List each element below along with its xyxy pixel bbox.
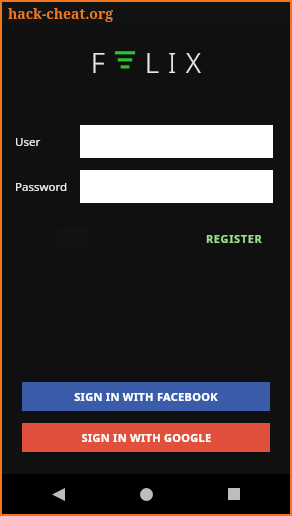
staticText: L bbox=[145, 44, 159, 81]
button[interactable]: Home bbox=[129, 477, 163, 511]
staticText: X bbox=[186, 44, 201, 81]
staticText: F bbox=[91, 44, 105, 81]
staticText: SIGN IN WITH GOOGLE bbox=[81, 430, 212, 445]
staticText: Password bbox=[15, 179, 68, 195]
staticText: SIGN IN WITH FACEBOOK bbox=[74, 389, 218, 404]
button[interactable]: SIGN IN WITH FACEBOOK bbox=[22, 382, 270, 411]
staticText: hack-cheat.org bbox=[8, 4, 114, 23]
button[interactable]: SIGN IN WITH GOOGLE bbox=[22, 423, 270, 452]
staticText: User bbox=[15, 134, 41, 150]
button[interactable]: Back bbox=[41, 477, 75, 511]
button[interactable]: REGISTER bbox=[196, 225, 273, 252]
button[interactable]: Recent apps bbox=[217, 477, 251, 511]
staticText: REGISTER bbox=[206, 231, 263, 246]
staticText: I bbox=[168, 44, 177, 81]
